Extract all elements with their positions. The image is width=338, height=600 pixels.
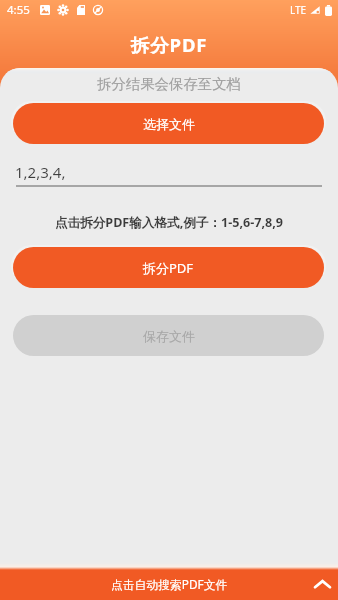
staticText: 点击拆分PDF输入格式,例子：1-5,6-7,8,9 [0, 214, 338, 231]
button[interactable]: 点击自动搜索PDF文件 [0, 567, 338, 600]
staticText: LTE [290, 3, 307, 17]
button[interactable]: 保存文件 [13, 315, 324, 356]
button[interactable]: 选择文件 [13, 103, 324, 144]
staticText: 拆分PDF [131, 32, 208, 57]
staticText: 1,2,3,4, [15, 162, 66, 182]
button[interactable]: 拆分PDF [13, 247, 324, 288]
staticText: 点击自动搜索PDF文件 [111, 576, 228, 592]
staticText: 选择文件 [143, 116, 195, 132]
staticText: 保存文件 [143, 328, 195, 344]
staticText: 拆分结果会保存至文档 [0, 75, 338, 93]
staticText: 拆分PDF [143, 259, 194, 277]
staticText: 4:55 [7, 2, 30, 18]
other: Expand [311, 573, 333, 595]
